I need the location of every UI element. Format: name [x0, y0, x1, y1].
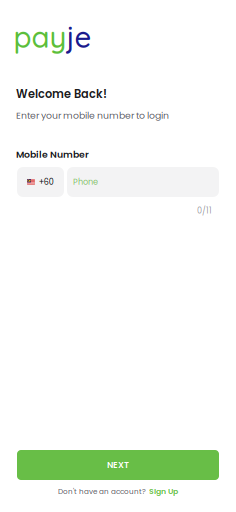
staticText: pay [13, 18, 66, 55]
button[interactable]: Select country code, currently plus 60 [17, 167, 64, 197]
button[interactable]: NEXT [17, 450, 219, 480]
staticText: Don't have an account? [58, 486, 146, 496]
button[interactable]: Sign Up [149, 486, 178, 497]
staticText: Phone [73, 176, 98, 188]
staticText: je [66, 18, 91, 55]
staticText: Enter your mobile number to login [16, 109, 169, 122]
staticText: +60 [39, 176, 54, 188]
staticText: Welcome Back! [16, 86, 107, 102]
staticText: NEXT [107, 459, 129, 471]
staticText: Sign Up [149, 486, 178, 497]
staticText: 0/11 [197, 205, 212, 216]
staticText: Mobile Number [16, 148, 89, 161]
button[interactable]: Phone number [67, 167, 219, 197]
